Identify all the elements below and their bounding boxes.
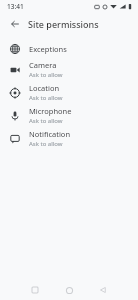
staticText: Ask to allow [29,94,63,102]
button[interactable]: Location [0,81,138,104]
staticText: Site permissions [28,18,99,30]
staticText: Microphone [29,106,72,116]
button[interactable]: Back [5,14,25,34]
button[interactable]: Microphone [0,104,138,127]
staticText: Notification [29,129,71,139]
button[interactable]: Back [92,280,114,300]
button[interactable]: Recent apps [24,280,46,300]
staticText: Ask to allow [29,71,63,79]
button[interactable]: Exceptions [0,39,138,58]
staticText: Camera [29,60,57,70]
button[interactable]: Home [58,280,80,300]
staticText: Ask to allow [29,140,63,148]
button[interactable]: Camera [0,58,138,81]
button[interactable]: Notification [0,127,138,150]
staticText: Ask to allow [29,117,63,125]
staticText: Location [29,83,60,93]
staticText: Exceptions [29,44,67,54]
staticText: 13:41 [7,2,24,11]
